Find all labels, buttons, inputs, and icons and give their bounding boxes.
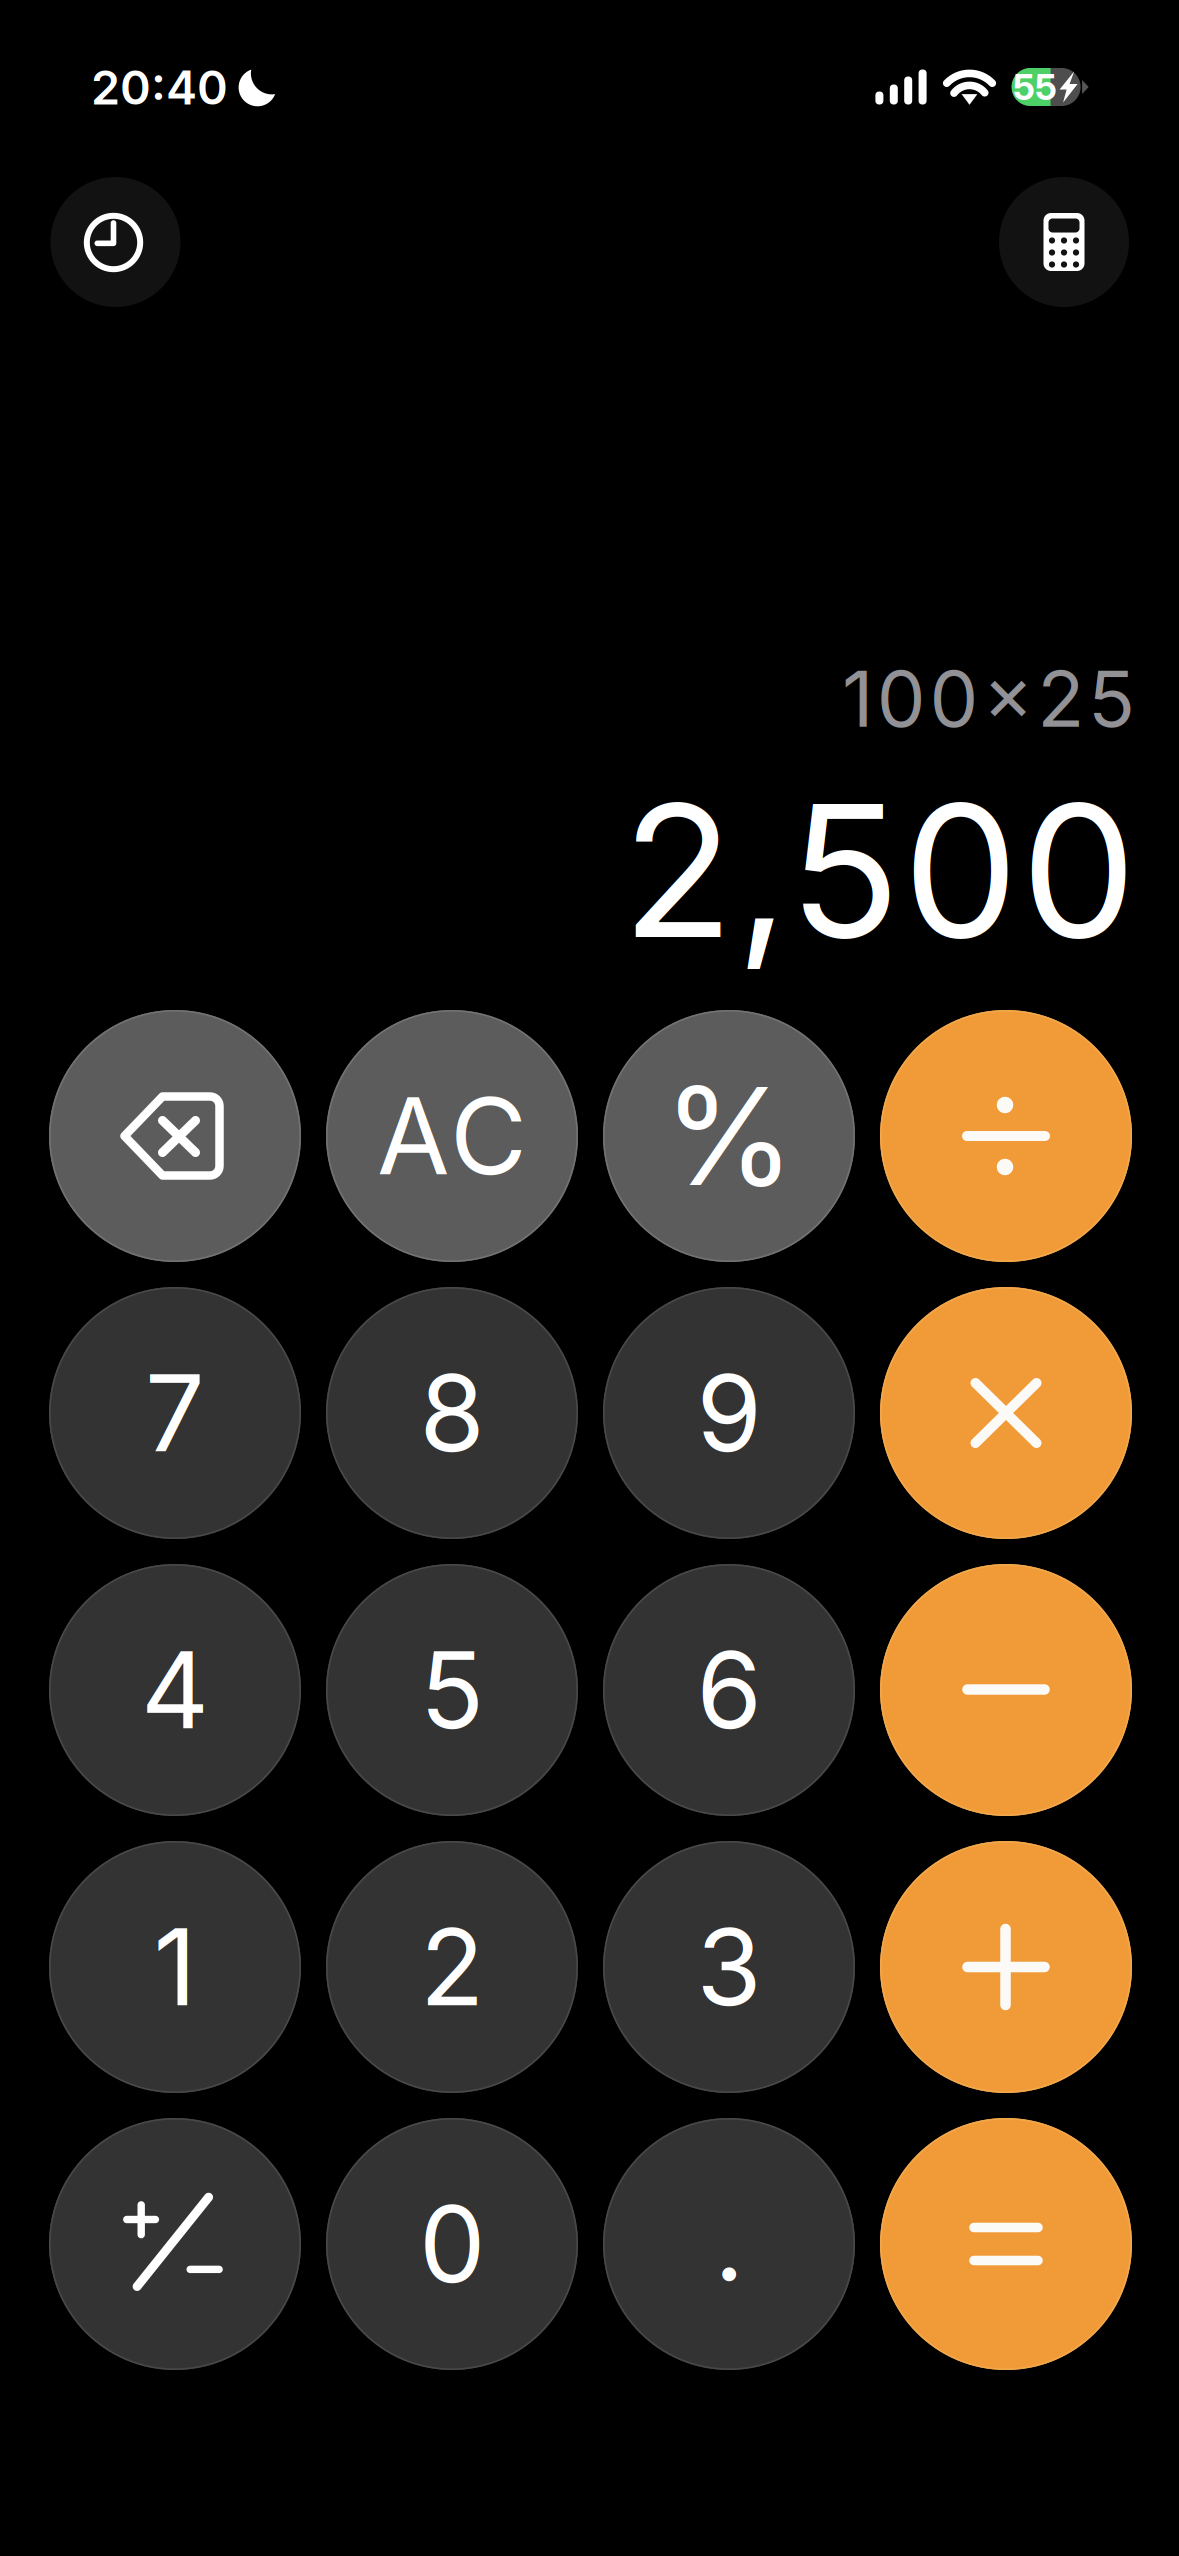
staticText: 55 bbox=[1013, 65, 1057, 109]
staticText: 4 bbox=[141, 1626, 209, 1754]
button[interactable]: Multiply bbox=[880, 1287, 1132, 1539]
button[interactable]: 6 bbox=[603, 1564, 855, 1816]
staticText: 6 bbox=[696, 1626, 761, 1754]
button[interactable]: Toggle sign bbox=[49, 2118, 301, 2370]
staticText: 20:40 bbox=[91, 59, 228, 116]
staticText: 2,500 bbox=[622, 760, 1136, 981]
button[interactable]: AC bbox=[326, 1010, 578, 1262]
staticText: 8 bbox=[419, 1349, 484, 1477]
button[interactable]: 0 bbox=[326, 2118, 578, 2370]
staticText: 100×25 bbox=[842, 652, 1135, 745]
button[interactable]: Add bbox=[880, 1841, 1132, 2093]
button[interactable]: History bbox=[50, 177, 180, 307]
staticText: 9 bbox=[696, 1349, 761, 1477]
button[interactable]: 8 bbox=[326, 1287, 578, 1539]
button[interactable]: 9 bbox=[603, 1287, 855, 1539]
button[interactable]: Calculator bbox=[999, 177, 1129, 307]
staticText: 1 bbox=[153, 1903, 196, 2031]
button[interactable]: Subtract bbox=[880, 1564, 1132, 1816]
button[interactable]: 4 bbox=[49, 1564, 301, 1816]
button[interactable]: 5 bbox=[326, 1564, 578, 1816]
staticText: AC bbox=[377, 1072, 527, 1200]
staticText: 0 bbox=[419, 2180, 485, 2308]
staticText: 2 bbox=[420, 1903, 484, 2031]
button[interactable]: . bbox=[603, 2118, 855, 2370]
staticText: % bbox=[663, 1054, 795, 1217]
button[interactable]: Divide bbox=[880, 1010, 1132, 1262]
button[interactable]: Delete bbox=[49, 1010, 301, 1262]
staticText: . bbox=[714, 2178, 744, 2306]
button[interactable]: 1 bbox=[49, 1841, 301, 2093]
button[interactable]: 2 bbox=[326, 1841, 578, 2093]
staticText: 5 bbox=[420, 1626, 484, 1754]
button[interactable]: 7 bbox=[49, 1287, 301, 1539]
button[interactable]: 3 bbox=[603, 1841, 855, 2093]
staticText: 7 bbox=[145, 1349, 205, 1477]
button[interactable]: Equals bbox=[880, 2118, 1132, 2370]
staticText: 3 bbox=[696, 1903, 761, 2031]
button[interactable]: % bbox=[603, 1010, 855, 1262]
